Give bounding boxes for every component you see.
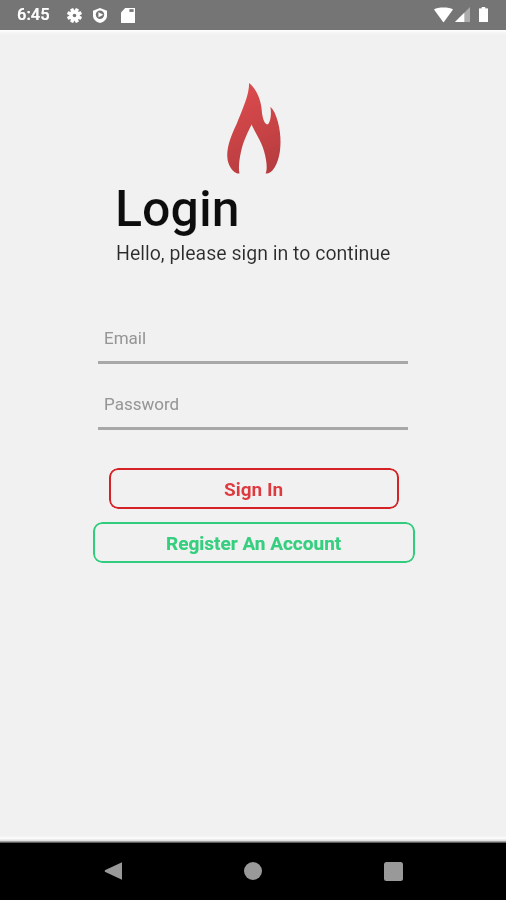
button[interactable]: Back (90, 849, 134, 893)
staticText: 6:45 (17, 5, 50, 24)
staticText: Email (104, 328, 147, 348)
button[interactable]: Email (98, 310, 408, 364)
button[interactable]: Password (98, 376, 408, 430)
button[interactable]: Home (231, 849, 275, 893)
button[interactable]: Sign In (109, 468, 399, 509)
staticText: Sign In (224, 478, 284, 500)
staticText: Login (115, 180, 240, 239)
staticText: Hello, please sign in to continue (116, 242, 391, 265)
staticText: Password (104, 394, 180, 414)
button[interactable]: Recent apps (371, 849, 415, 893)
staticText: Register An Account (166, 532, 342, 554)
button[interactable]: Register An Account (93, 522, 415, 563)
